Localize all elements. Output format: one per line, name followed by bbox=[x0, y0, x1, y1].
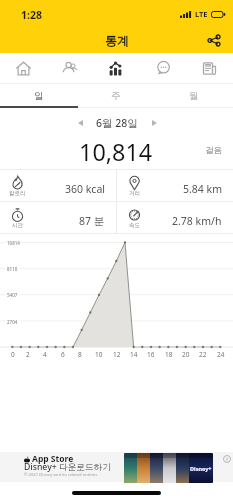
staticText: 16 bbox=[147, 350, 155, 359]
staticText: 14 bbox=[130, 350, 138, 359]
button[interactable]: Previous day bbox=[72, 115, 88, 131]
staticText: 18 bbox=[165, 350, 173, 359]
button[interactable]: 칼로리 bbox=[0, 170, 116, 201]
staticText: 5407 bbox=[7, 292, 18, 298]
staticText: LTE bbox=[195, 9, 208, 19]
staticText: 속도 bbox=[129, 222, 140, 229]
staticText: 2 bbox=[26, 350, 30, 359]
button[interactable]: Next day bbox=[146, 115, 162, 131]
button[interactable]: 거리 bbox=[117, 170, 233, 201]
staticText: 통계 bbox=[105, 33, 129, 48]
staticText: App Store bbox=[32, 453, 74, 465]
staticText: Disney+ bbox=[190, 465, 212, 472]
button[interactable]: 속도 bbox=[117, 202, 233, 233]
staticText: 12 bbox=[113, 350, 121, 359]
staticText: 10814 bbox=[7, 240, 20, 246]
staticText: 일 bbox=[34, 90, 44, 102]
staticText: 거리 bbox=[129, 190, 140, 197]
staticText: 시간 bbox=[12, 222, 23, 229]
staticText: Disney+ 다운로드하기 bbox=[24, 461, 112, 473]
button[interactable]: 시간 bbox=[0, 202, 116, 233]
staticText: 1:28 bbox=[21, 8, 42, 22]
staticText: 월 bbox=[189, 90, 199, 102]
button[interactable]: Chat bbox=[139, 53, 186, 83]
button[interactable]: Home bbox=[0, 53, 46, 83]
staticText: 24 bbox=[217, 350, 225, 359]
staticText: © 2021 Disney and its related entities bbox=[24, 472, 98, 478]
button[interactable]: News bbox=[186, 53, 233, 83]
button[interactable]: Friends bbox=[46, 53, 92, 83]
staticText: 6 bbox=[61, 350, 65, 359]
button[interactable]: App Store bbox=[0, 452, 233, 482]
button[interactable]: 월 bbox=[155, 84, 233, 108]
staticText: 2704 bbox=[7, 319, 18, 325]
button[interactable]: 주 bbox=[77, 84, 155, 108]
staticText: 4 bbox=[43, 350, 47, 359]
staticText: 칼로리 bbox=[9, 190, 26, 197]
staticText: 87 분 bbox=[79, 214, 105, 228]
staticText: 8110 bbox=[7, 266, 18, 272]
staticText: 8 bbox=[78, 350, 82, 359]
button[interactable]: Statistics bbox=[92, 53, 139, 83]
button[interactable]: Share bbox=[202, 28, 226, 52]
staticText: 5.84 km bbox=[183, 182, 222, 196]
staticText: 360 kcal bbox=[65, 182, 105, 196]
staticText: 걸음 bbox=[205, 145, 222, 156]
staticText: 주 bbox=[111, 90, 121, 102]
staticText: 6월 28일 bbox=[96, 116, 138, 130]
staticText: 10 bbox=[95, 350, 103, 359]
staticText: 20 bbox=[182, 350, 190, 359]
staticText: 10,814 bbox=[79, 136, 153, 168]
button[interactable]: Ad information bbox=[223, 455, 231, 463]
staticText: 2.78 km/h bbox=[172, 214, 222, 228]
staticText: 0 bbox=[11, 350, 15, 359]
staticText: 22 bbox=[199, 350, 207, 359]
button[interactable]: 일 bbox=[0, 84, 77, 108]
